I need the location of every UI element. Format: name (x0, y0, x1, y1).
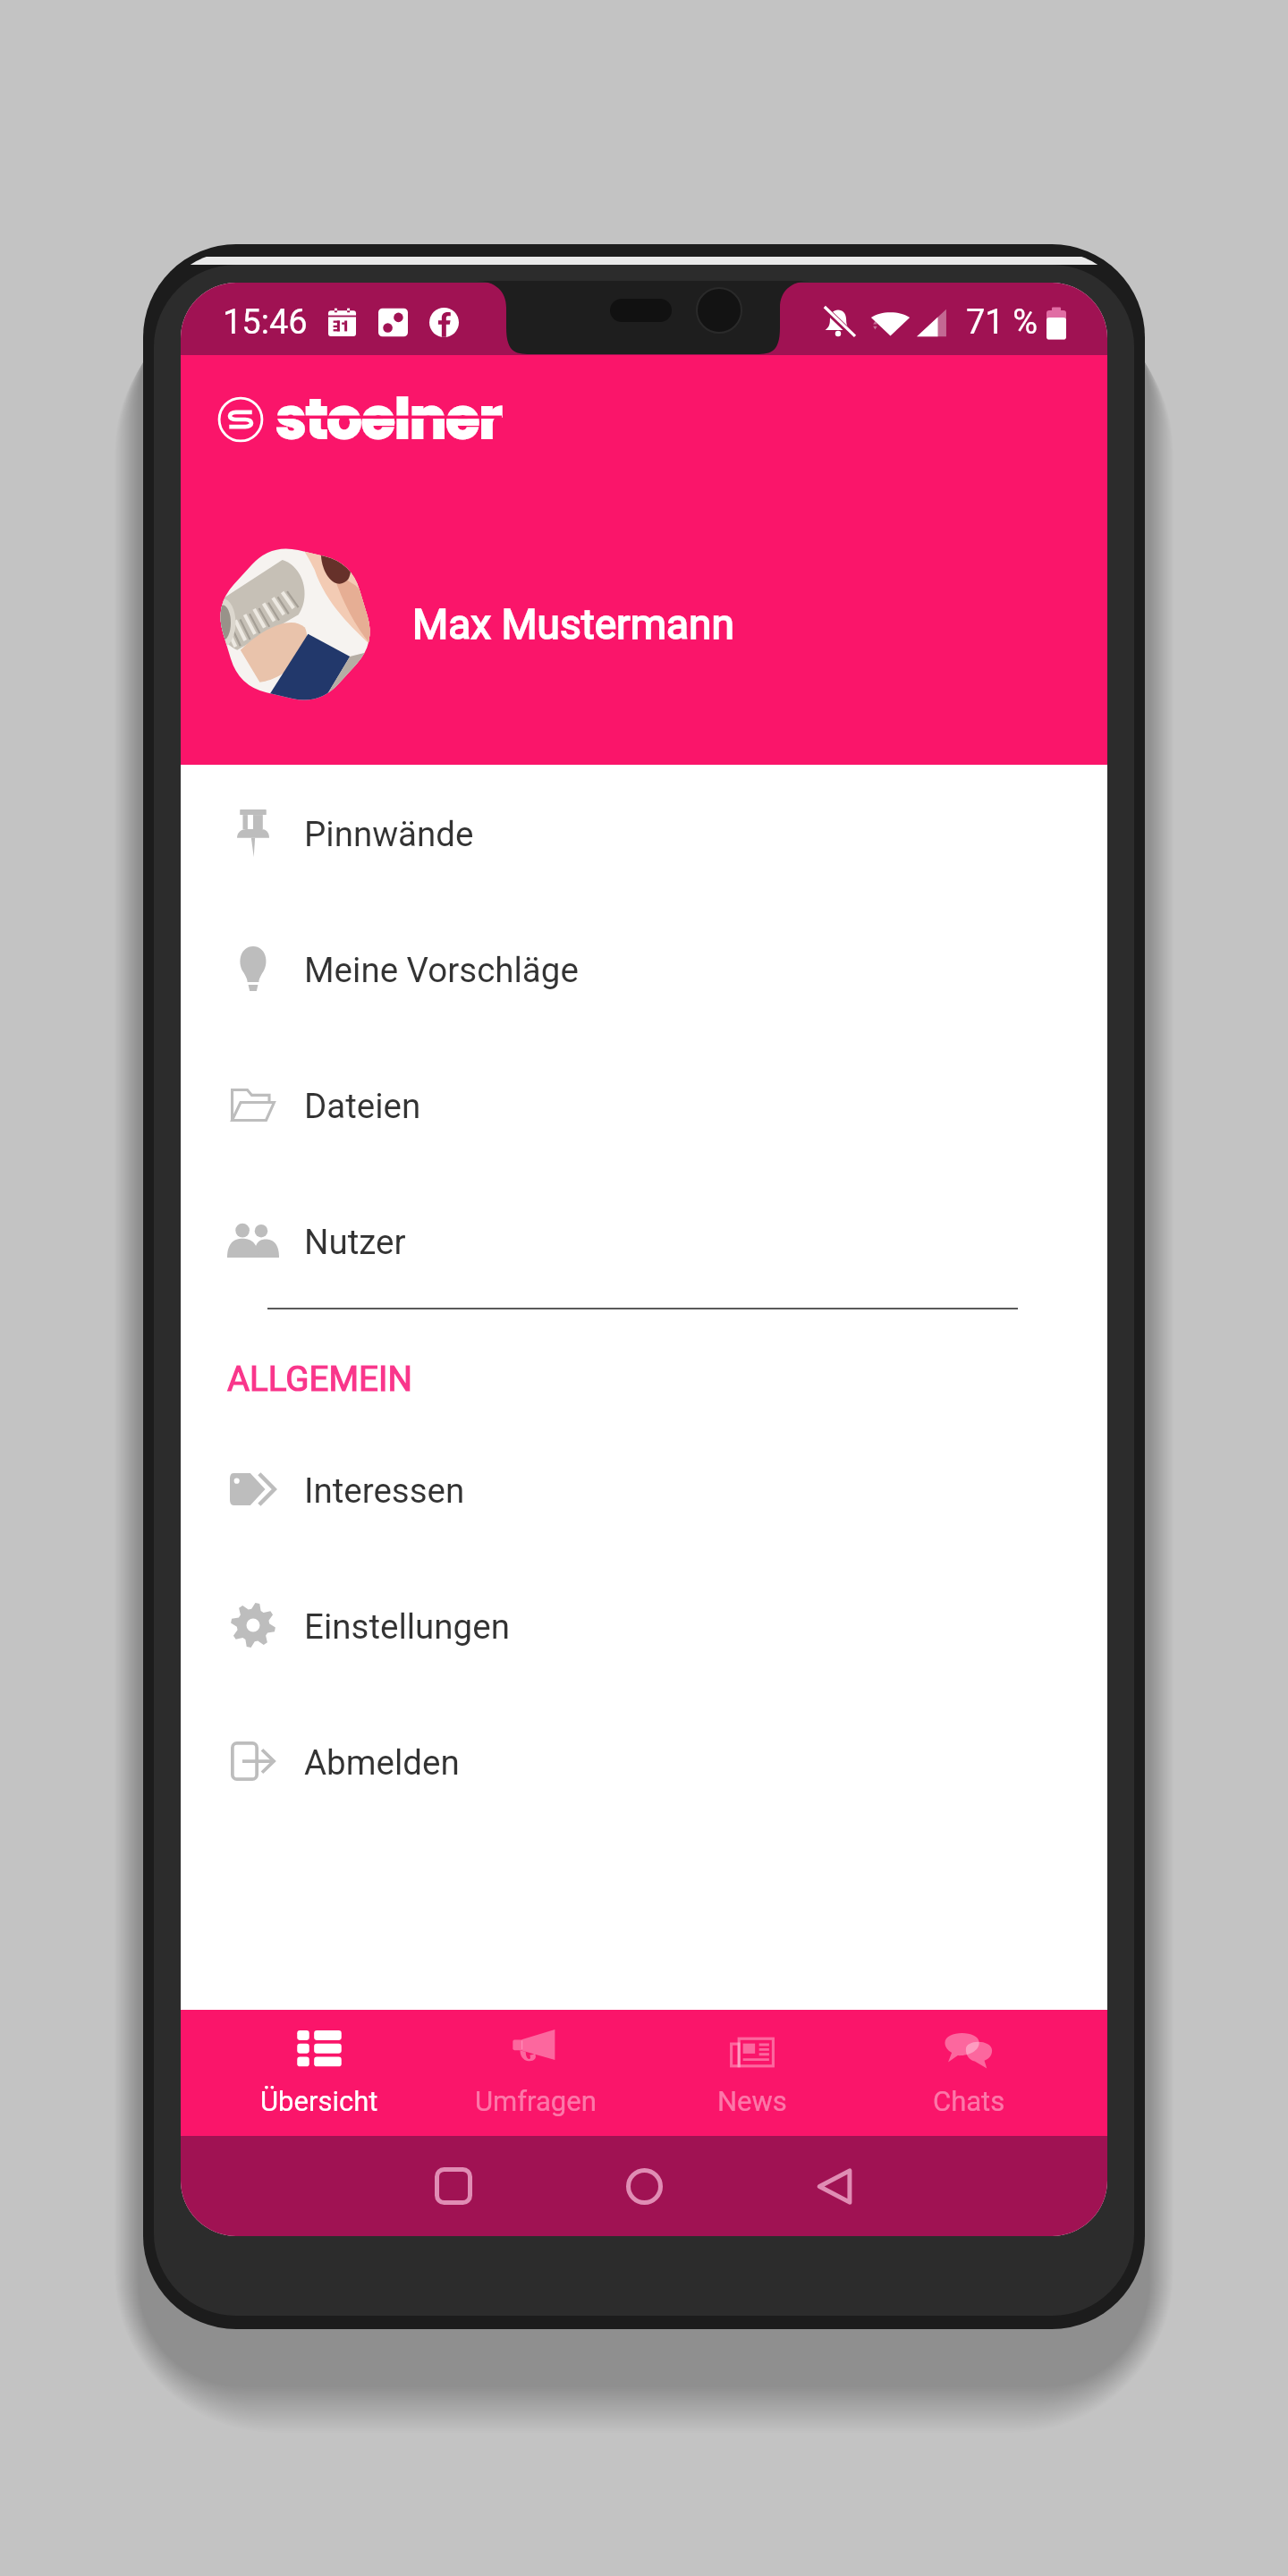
staticText: ALLGEMEIN (227, 1359, 412, 1399)
button[interactable]: Abmelden (181, 1693, 1107, 1829)
staticText: News (717, 2085, 787, 2117)
button[interactable]: Nutzer (181, 1173, 1107, 1309)
staticText: Übersicht (260, 2085, 378, 2117)
button[interactable]: Einstellungen (181, 1557, 1107, 1693)
staticText: 15:46 (223, 302, 308, 343)
staticText: 71 % (966, 302, 1038, 343)
button[interactable]: News (644, 2010, 860, 2136)
button[interactable]: Home (548, 2136, 740, 2236)
staticText: Interessen (304, 1470, 465, 1511)
button[interactable]: Recent apps (358, 2136, 548, 2236)
staticText: Chats (933, 2085, 1005, 2117)
button[interactable]: Dateien (181, 1037, 1107, 1173)
staticText: Nutzer (304, 1222, 406, 1262)
button[interactable]: Übersicht (211, 2010, 428, 2136)
staticText: Umfragen (475, 2085, 597, 2117)
button[interactable]: Interessen (181, 1421, 1107, 1557)
staticText: Dateien (304, 1086, 421, 1126)
staticText: Pinnwände (304, 814, 474, 854)
staticText: Abmelden (304, 1742, 460, 1783)
button[interactable]: Pinnwände (181, 765, 1107, 901)
staticText: Max Mustermann (412, 600, 734, 648)
button[interactable]: Back (740, 2136, 930, 2236)
button[interactable]: Meine Vorschläge (181, 901, 1107, 1037)
staticText: stoelner (275, 380, 502, 458)
button[interactable]: Umfragen (428, 2010, 644, 2136)
button[interactable]: Chats (860, 2010, 1077, 2136)
staticText: Einstellungen (304, 1606, 510, 1647)
staticText: Meine Vorschläge (304, 950, 579, 990)
